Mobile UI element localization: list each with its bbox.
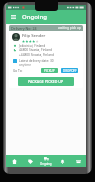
staticText: PICKUP <box>44 69 55 73</box>
staticText: DROPOFF <box>63 69 77 73</box>
staticText: anytime <box>19 63 32 67</box>
button[interactable]: Archive <box>70 155 86 167</box>
staticText: Go To: <box>13 69 23 73</box>
staticText: 44800 Sivasta, Finland <box>19 48 53 52</box>
staticText: Filip Sender <box>22 33 46 39</box>
button[interactable]: DROPOFF <box>61 68 78 73</box>
button[interactable]: Offers <box>22 155 38 167</box>
staticText: +44800 Sivasta, Finland <box>19 53 54 57</box>
staticText: waiting pick up <box>58 26 81 30</box>
button[interactable]: Home <box>6 155 22 167</box>
staticText: Ongoing <box>22 13 47 21</box>
button[interactable]: Open navigation menu <box>8 12 18 22</box>
button[interactable]: Ongoing <box>38 155 54 167</box>
staticText: PACKAGE PICKED UP <box>28 79 64 84</box>
staticText: Latest delivery date: 30 <box>19 59 54 63</box>
button[interactable]: Notifications <box>54 155 70 167</box>
staticText: Jokioistui, Finland <box>19 44 46 48</box>
button[interactable]: PICKUP <box>41 68 58 73</box>
staticText: Ongoing <box>40 162 52 166</box>
staticText: Delivery No: 24 <box>11 26 37 31</box>
button[interactable]: PACKAGE PICKED UP <box>18 77 74 86</box>
